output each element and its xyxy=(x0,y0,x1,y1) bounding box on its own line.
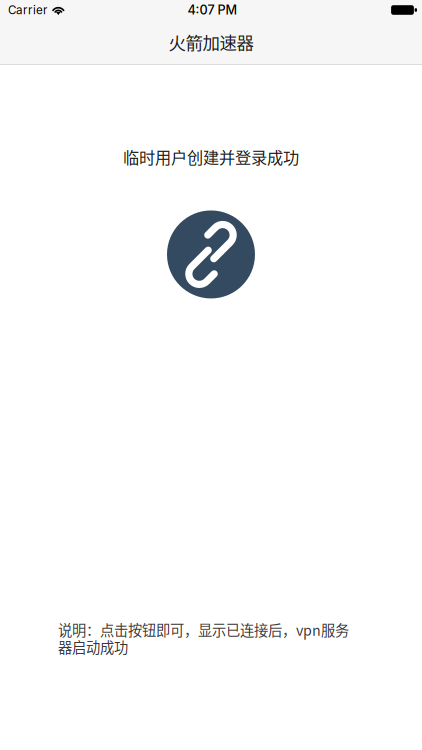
staticText: 临时用户创建并登录成功 xyxy=(123,145,299,168)
button[interactable]: Connect xyxy=(167,210,255,298)
staticText: 火箭加速器 xyxy=(168,29,253,55)
staticText: Carrier xyxy=(8,3,47,17)
staticText: 说明：点击按钮即可，显示已连接后，vpn服务 xyxy=(58,619,349,640)
staticText: 4:07 PM xyxy=(187,2,237,18)
staticText: 器启动成功 xyxy=(58,636,128,657)
